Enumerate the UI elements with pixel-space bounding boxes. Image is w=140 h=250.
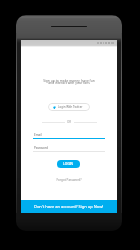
staticText: LOGIN [63,162,74,166]
button[interactable]: LOGIN [57,160,80,168]
staticText: Email [34,133,42,137]
button[interactable]: Forgot Password? [21,178,117,182]
staticText: Don't have an account? Sign up Now! [34,204,104,209]
button[interactable]: Login With Twitter [48,103,90,111]
staticText: Sign up to make money, have fun and inte… [21,78,117,85]
button[interactable]: Password [33,146,105,152]
staticText: Login With Twitter [58,105,83,109]
button[interactable]: Don't have an account? Sign up Now! [21,200,117,213]
button[interactable]: Email [33,133,105,139]
staticText: Password [34,146,48,150]
staticText: OR [67,120,72,124]
